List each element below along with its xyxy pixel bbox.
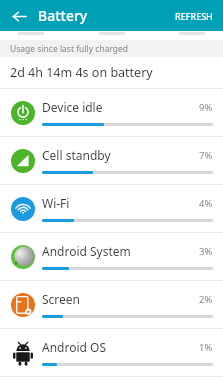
other: Cell standby [10,148,36,174]
staticText: Wi-Fi [42,195,70,211]
button[interactable]: Screen [0,281,223,328]
other: Screen [10,292,36,318]
button[interactable]: Android OS [0,329,223,376]
button[interactable]: Android System [0,233,223,280]
other: Android System [10,244,36,270]
staticText: Cell standby [42,147,111,163]
button[interactable]: Back [6,3,32,29]
button[interactable]: Cell standby [0,137,223,184]
staticText: 9% [199,101,213,114]
staticText: Android OS [42,339,106,355]
other: Android OS [10,340,36,366]
button[interactable]: Device idle [0,89,223,136]
button[interactable]: REFRESH [165,4,223,28]
staticText: 3% [199,245,213,258]
staticText: 1% [199,341,213,354]
staticText: REFRESH [175,10,213,22]
staticText: 2d 4h 14m 4s on battery [10,64,153,81]
other: Wi-Fi [10,196,36,222]
staticText: 7% [199,149,213,162]
other: Device idle [10,100,36,126]
staticText: Battery [38,6,88,25]
staticText: Screen [42,291,81,307]
staticText: Device idle [42,99,103,115]
staticText: 2% [199,293,213,306]
staticText: Usage since last fully charged [10,43,129,55]
staticText: 4% [199,197,213,210]
button[interactable]: Wi-Fi [0,185,223,232]
staticText: Android System [42,243,131,259]
